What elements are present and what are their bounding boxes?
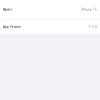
staticText: 1.1.4 xyxy=(89,25,97,29)
button[interactable]: App Version xyxy=(0,20,100,34)
button[interactable]: Model xyxy=(0,0,100,19)
staticText: iPhone 15 xyxy=(81,8,97,11)
staticText: Model xyxy=(3,8,12,11)
staticText: App Version xyxy=(3,25,21,29)
